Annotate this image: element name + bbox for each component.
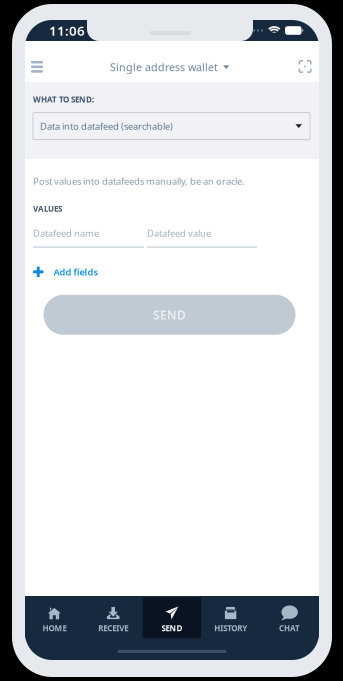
staticText: Post values into datafeeds manually, be … <box>33 175 245 187</box>
staticText: Add fields <box>53 266 98 278</box>
button[interactable]: CHAT <box>260 597 319 638</box>
staticText: WHAT TO SEND: <box>33 94 94 105</box>
button[interactable]: SEND <box>143 597 201 638</box>
button[interactable]: SEND <box>43 295 295 335</box>
staticText: HISTORY <box>214 623 247 633</box>
staticText: 11:06 <box>49 22 85 39</box>
staticText: Single address wallet <box>110 60 218 74</box>
staticText: HOME <box>42 623 66 633</box>
button[interactable]: Data into datafeed (searchable) <box>33 113 310 140</box>
staticText: SEND <box>153 307 186 323</box>
button[interactable]: Menu <box>25 54 53 80</box>
staticText: Data into datafeed (searchable) <box>40 120 173 132</box>
button[interactable]: RECEIVE <box>84 597 143 638</box>
button[interactable]: HISTORY <box>201 597 260 638</box>
button[interactable]: Single address wallet <box>104 53 235 81</box>
staticText: Datafeed name <box>33 227 99 239</box>
staticText: RECEIVE <box>98 623 128 633</box>
button[interactable]: Scan QR code <box>289 53 322 80</box>
button[interactable]: Add fields <box>33 266 98 278</box>
button[interactable]: HOME <box>25 597 84 638</box>
staticText: Datafeed value <box>147 227 211 239</box>
staticText: VALUES <box>33 203 62 214</box>
staticText: SEND <box>161 623 182 633</box>
staticText: CHAT <box>279 623 300 633</box>
